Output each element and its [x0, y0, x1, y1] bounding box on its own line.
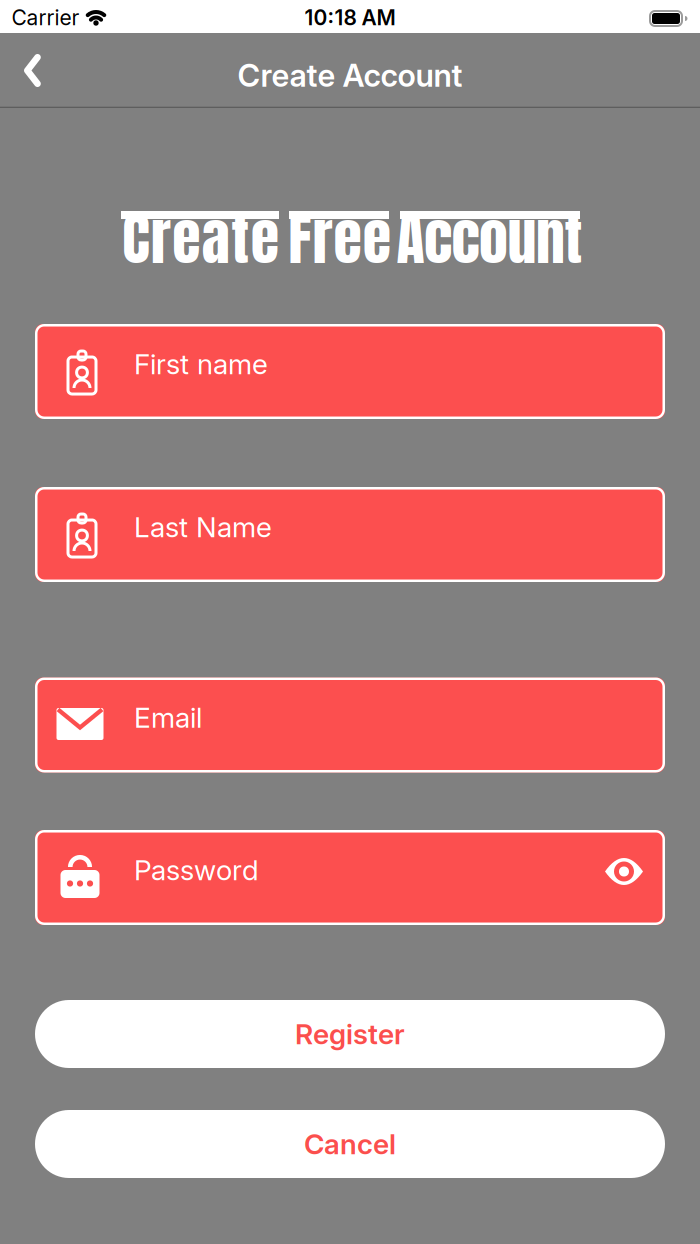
button[interactable]: First name: [35, 324, 665, 419]
button[interactable]: Cancel: [35, 1110, 665, 1178]
staticText: 10:18 AM: [304, 5, 395, 30]
staticText: Account: [396, 195, 582, 282]
staticText: Last Name: [134, 510, 272, 544]
staticText: Cancel: [304, 1127, 396, 1161]
staticText: Email: [134, 701, 202, 734]
staticText: Carrier: [11, 5, 79, 30]
staticText: Create: [122, 195, 279, 282]
button[interactable]: Last Name: [35, 487, 665, 582]
staticText: Register: [295, 1017, 405, 1051]
button[interactable]: Password: [35, 830, 665, 925]
button[interactable]: Email: [35, 677, 665, 772]
staticText: Create Account: [237, 57, 462, 94]
staticText: First name: [134, 347, 268, 381]
staticText: Free: [288, 195, 391, 282]
button[interactable]: Register: [35, 1000, 665, 1068]
staticText: Password: [134, 853, 259, 887]
button[interactable]: Back: [0, 34, 41, 107]
button[interactable]: Show password: [605, 864, 643, 891]
